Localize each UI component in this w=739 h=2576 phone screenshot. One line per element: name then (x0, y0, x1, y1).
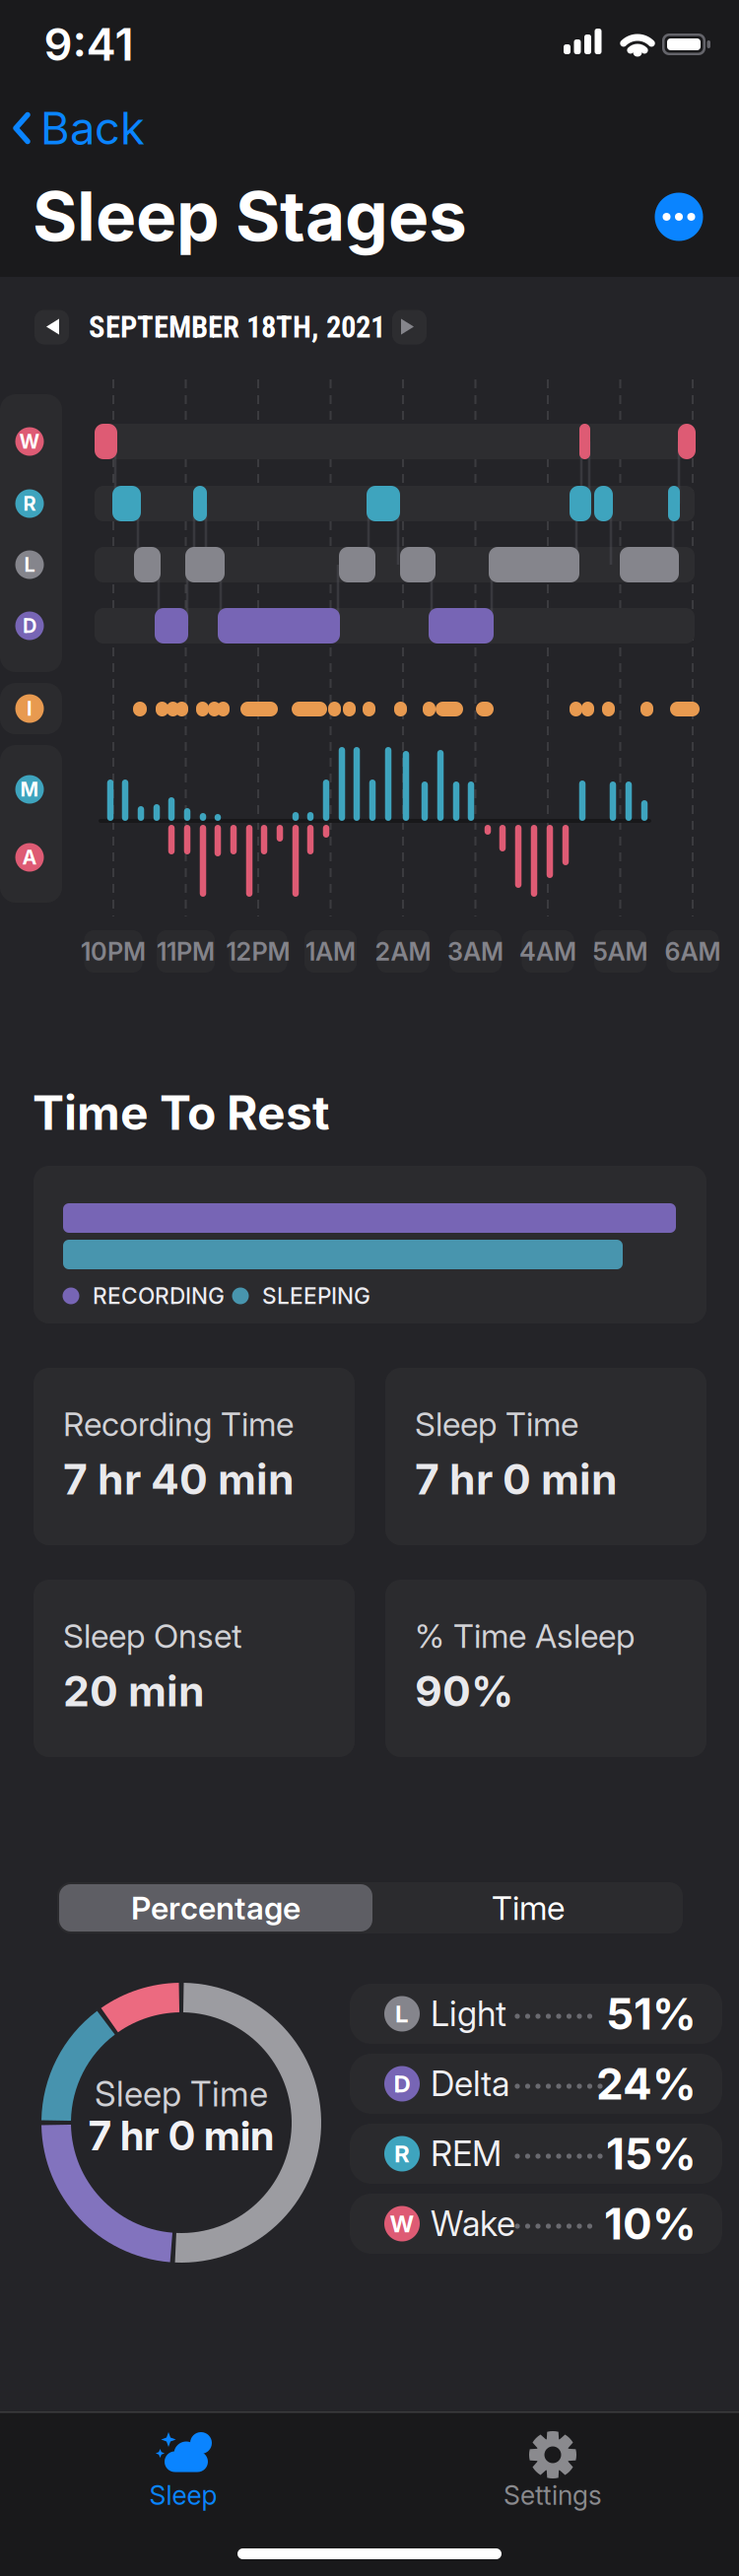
staticText: Delta (431, 2064, 509, 2104)
staticText: 7 hr 0 min (89, 2111, 274, 2160)
staticText: 20 min (63, 1666, 205, 1716)
button[interactable]: Sleep (95, 2411, 272, 2510)
staticText: Percentage (131, 1889, 301, 1926)
staticText: Sleep (149, 2480, 217, 2511)
staticText: REM (431, 2134, 502, 2174)
button[interactable]: Previous day (34, 310, 69, 344)
staticText: Sleep Onset (63, 1616, 242, 1655)
staticText: R (23, 492, 36, 515)
staticText: Light (431, 1994, 506, 2034)
button[interactable]: Time (375, 1884, 681, 1932)
staticText: R (394, 2140, 410, 2168)
staticText: 51% (606, 1988, 697, 2039)
staticText: 4AM (519, 937, 576, 966)
staticText: L (395, 2000, 409, 2028)
staticText: SLEEPING (262, 1283, 370, 1309)
staticText: Sleep Time (415, 1405, 578, 1443)
staticText: W (390, 2210, 414, 2238)
staticText: D (23, 614, 36, 637)
staticText: D (394, 2070, 410, 2098)
staticText: L (24, 553, 35, 576)
staticText: Time To Rest (33, 1085, 330, 1140)
staticText: 12PM (226, 937, 290, 966)
staticText: A (22, 846, 37, 869)
staticText: 5AM (593, 937, 648, 966)
staticText: Time (492, 1888, 565, 1927)
staticText: 10% (604, 2198, 697, 2249)
staticText: 2AM (375, 937, 431, 966)
staticText: 90% (415, 1666, 513, 1716)
button[interactable]: More (655, 193, 703, 241)
staticText: 7 hr 0 min (415, 1454, 618, 1504)
staticText: 6AM (665, 937, 721, 966)
staticText: SEPTEMBER 18TH, 2021 (89, 309, 385, 345)
staticText: 9:41 (44, 18, 134, 71)
staticText: Back (40, 102, 145, 155)
staticText: W (19, 430, 40, 453)
staticText: 7 hr 40 min (63, 1454, 295, 1504)
staticText: Sleep Stages (33, 176, 467, 256)
staticText: 3AM (447, 937, 504, 966)
staticText: Recording Time (63, 1405, 294, 1443)
staticText: M (20, 778, 39, 801)
staticText: 10PM (81, 937, 146, 966)
button[interactable]: Next day (392, 310, 427, 344)
staticText: 11PM (157, 937, 215, 966)
staticText: 24% (596, 2058, 697, 2109)
staticText: RECORDING (93, 1283, 225, 1309)
staticText: Settings (504, 2480, 602, 2511)
button[interactable]: Percentage (59, 1884, 372, 1932)
staticText: % Time Asleep (415, 1616, 635, 1655)
staticText: Wake (431, 2204, 515, 2244)
staticText: I (27, 697, 33, 720)
button[interactable]: Settings (464, 2411, 641, 2510)
staticText: 1AM (305, 937, 356, 966)
staticText: 15% (606, 2128, 697, 2179)
staticText: Sleep Time (95, 2074, 268, 2114)
button[interactable]: Back (13, 102, 145, 155)
